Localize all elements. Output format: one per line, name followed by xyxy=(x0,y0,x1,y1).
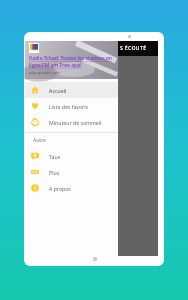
staticText: Plus xyxy=(49,169,60,176)
staticText: play.google.com xyxy=(29,70,60,75)
staticText: S ÉCOUTÉ xyxy=(120,45,147,52)
button[interactable]: Taux xyxy=(25,148,118,164)
button[interactable]: Liste des favoris xyxy=(25,98,118,114)
staticText: À propos xyxy=(49,185,71,192)
button[interactable]: Minuteur de sommeil xyxy=(25,114,118,130)
button[interactable]: Radio Tchad: Toutes les stations en lign… xyxy=(25,41,118,79)
staticText: Radio Tchad: Toutes les stations en lign… xyxy=(29,55,115,69)
staticText: Minuteur de sommeil xyxy=(49,119,102,126)
staticText: Autre xyxy=(33,137,46,144)
staticText: Accueil xyxy=(49,87,67,94)
staticText: Taux xyxy=(49,153,61,160)
button[interactable]: À propos xyxy=(25,180,118,196)
button[interactable]: Plus xyxy=(25,164,118,180)
button[interactable]: Accueil xyxy=(25,82,118,98)
staticText: Liste des favoris xyxy=(49,103,89,110)
